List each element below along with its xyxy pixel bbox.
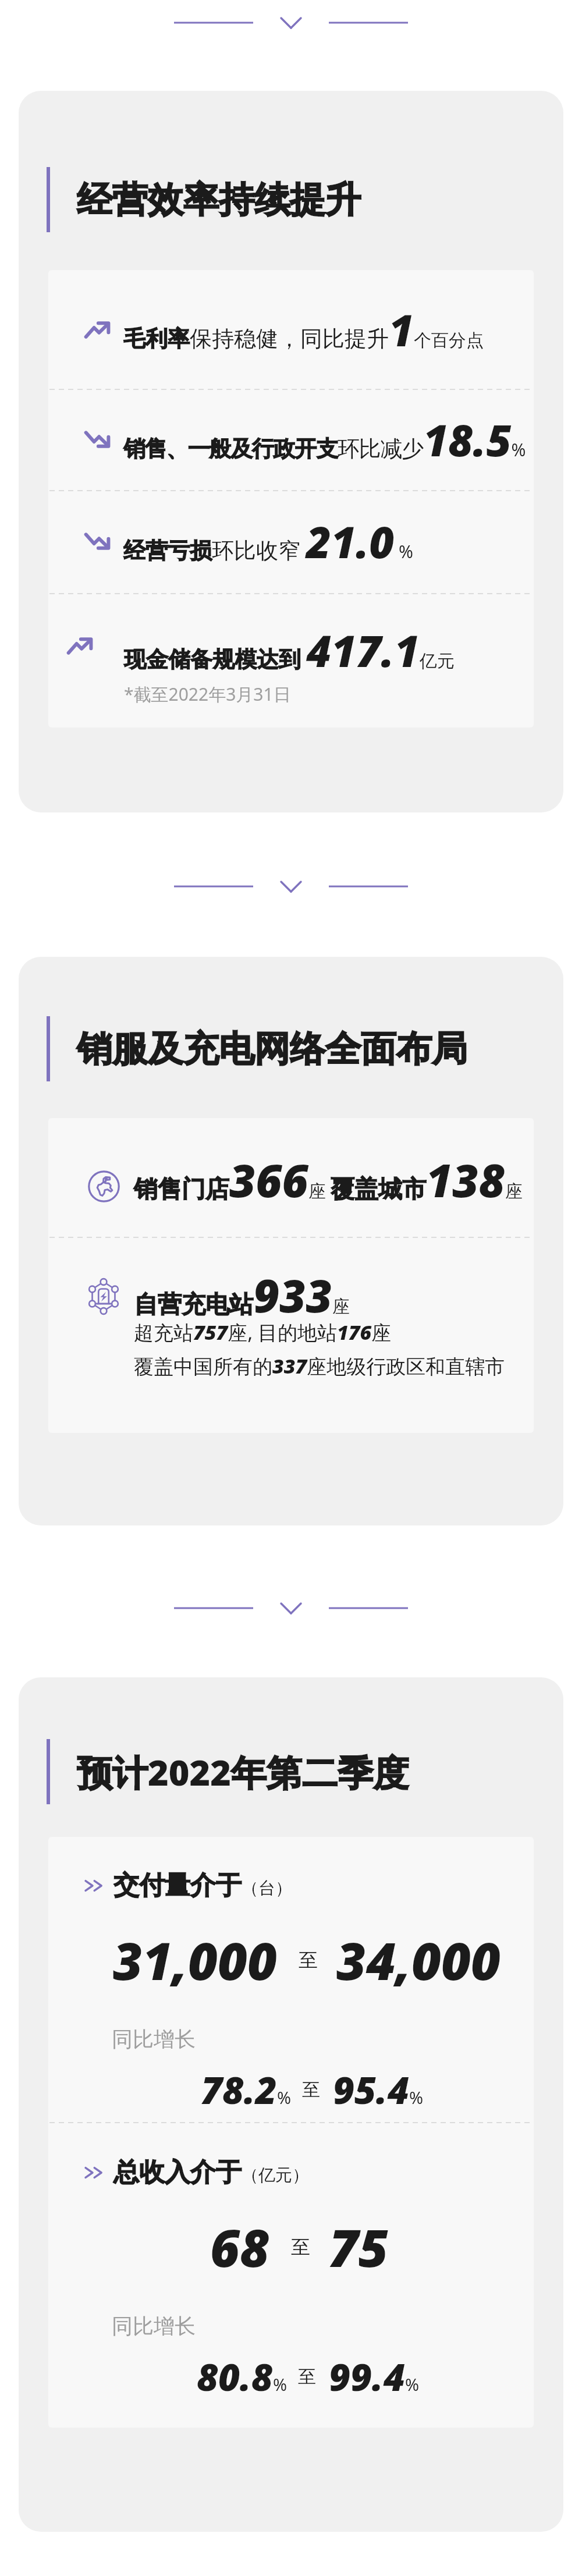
other: Stores [88, 1170, 120, 1202]
staticText: 销服及充电网络全面布局 [77, 1027, 467, 1071]
button[interactable]: 销服及充电网络全面布局 [19, 957, 563, 1525]
staticText: 交付量介于（台） [113, 1869, 292, 1901]
staticText: 销售、一般及行政开支环比减少18.5% [123, 410, 526, 469]
button[interactable]: Trending down [48, 490, 534, 593]
staticText: 销售门店366座 覆盖城市138座 [134, 1149, 523, 1211]
staticText: 95.4% [333, 2064, 424, 2115]
staticText: 毛利率保持稳健，同比提升1个百分点 [123, 300, 484, 359]
staticText: 78.2% [201, 2064, 292, 2115]
staticText: 34,000 [336, 1925, 501, 1995]
button[interactable]: 经营效率持续提升 [19, 91, 563, 812]
staticText: 75 [329, 2212, 389, 2282]
staticText: 至 [302, 2078, 320, 2101]
staticText: 99.4% [329, 2351, 420, 2402]
other: Trending down [84, 431, 111, 448]
staticText: 31,000 [113, 1925, 278, 1995]
staticText: 经营亏损环比收窄 21.0 % [123, 512, 414, 571]
staticText: 经营效率持续提升 [77, 178, 361, 222]
other: Trending down [84, 533, 111, 550]
staticText: *截至2022年3月31日 [124, 682, 291, 706]
staticText: 68 [210, 2212, 270, 2282]
staticText: 80.8% [197, 2351, 288, 2402]
staticText: 至 [291, 2235, 310, 2259]
staticText: 自营充电站933座 [134, 1264, 350, 1326]
button[interactable]: 总收入介于（亿元） [48, 2124, 534, 2409]
button[interactable]: Trending up [48, 270, 534, 389]
button[interactable]: Charging stations [48, 1237, 534, 1433]
button[interactable]: Trending down [48, 389, 534, 490]
button[interactable]: Stores [48, 1118, 534, 1237]
staticText: 至 [299, 1948, 318, 1972]
other: Trending up [67, 637, 93, 654]
staticText: 超充站757座, 目的地站176座 [134, 1319, 392, 1346]
staticText: 同比增长 [112, 2026, 196, 2052]
staticText: 覆盖中国所有的337座地级行政区和直辖市 [134, 1353, 505, 1379]
button[interactable]: 交付量介于（台） [48, 1837, 534, 2122]
other: Trending up [84, 321, 111, 338]
staticText: 现金储备规模达到 417.1亿元 [124, 621, 455, 680]
other: Charging stations [87, 1279, 120, 1314]
staticText: 总收入介于（亿元） [113, 2156, 309, 2188]
staticText: 至 [298, 2365, 316, 2388]
button[interactable]: 预计2022年第二季度 [19, 1677, 563, 2532]
staticText: 预计2022年第二季度 [77, 1748, 409, 1796]
staticText: 同比增长 [112, 2313, 196, 2339]
